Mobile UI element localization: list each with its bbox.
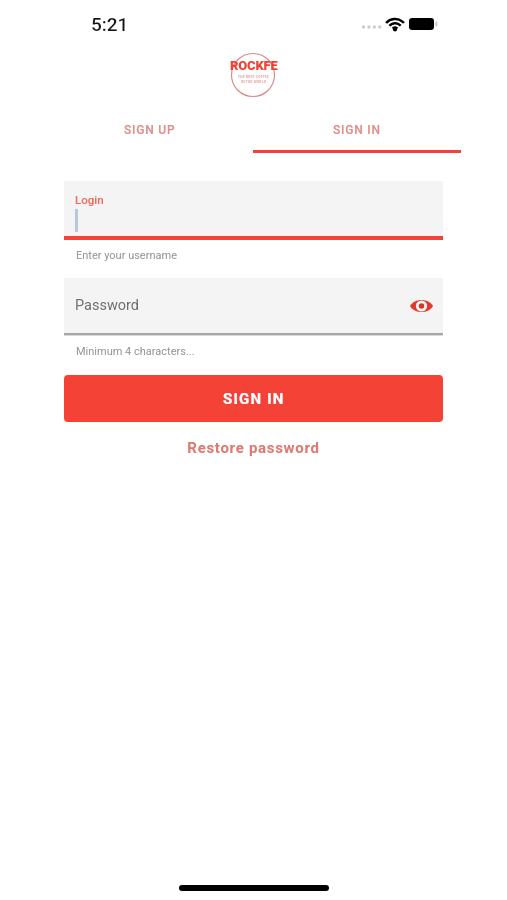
staticText: Password xyxy=(75,297,140,314)
staticText: IN THE WORLD xyxy=(241,80,267,84)
button[interactable]: Show password xyxy=(406,291,436,321)
button[interactable]: Password xyxy=(64,278,443,333)
button[interactable]: SIGN UP xyxy=(46,117,253,143)
staticText: Login xyxy=(75,193,104,206)
staticText: SIGN IN xyxy=(223,390,285,408)
button[interactable]: Login xyxy=(64,181,443,236)
button[interactable]: SIGN IN xyxy=(253,117,461,143)
staticText: 5:21 xyxy=(91,13,129,35)
staticText: Minimum 4 characters... xyxy=(76,345,195,358)
button[interactable]: Restore password xyxy=(0,439,507,457)
staticText: Enter your username xyxy=(76,249,177,262)
button[interactable]: SIGN IN xyxy=(64,375,443,422)
staticText: THE BEST COFFEE xyxy=(238,75,270,79)
staticText: SIGN IN xyxy=(333,123,381,137)
staticText: ROCKFE xyxy=(230,58,278,73)
staticText: SIGN UP xyxy=(124,123,176,137)
